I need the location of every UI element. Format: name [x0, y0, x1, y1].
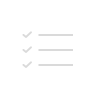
button[interactable]: Checklist item [0, 28, 100, 41]
button[interactable]: Checklist item [0, 43, 100, 56]
button[interactable]: Checklist item [0, 58, 100, 71]
